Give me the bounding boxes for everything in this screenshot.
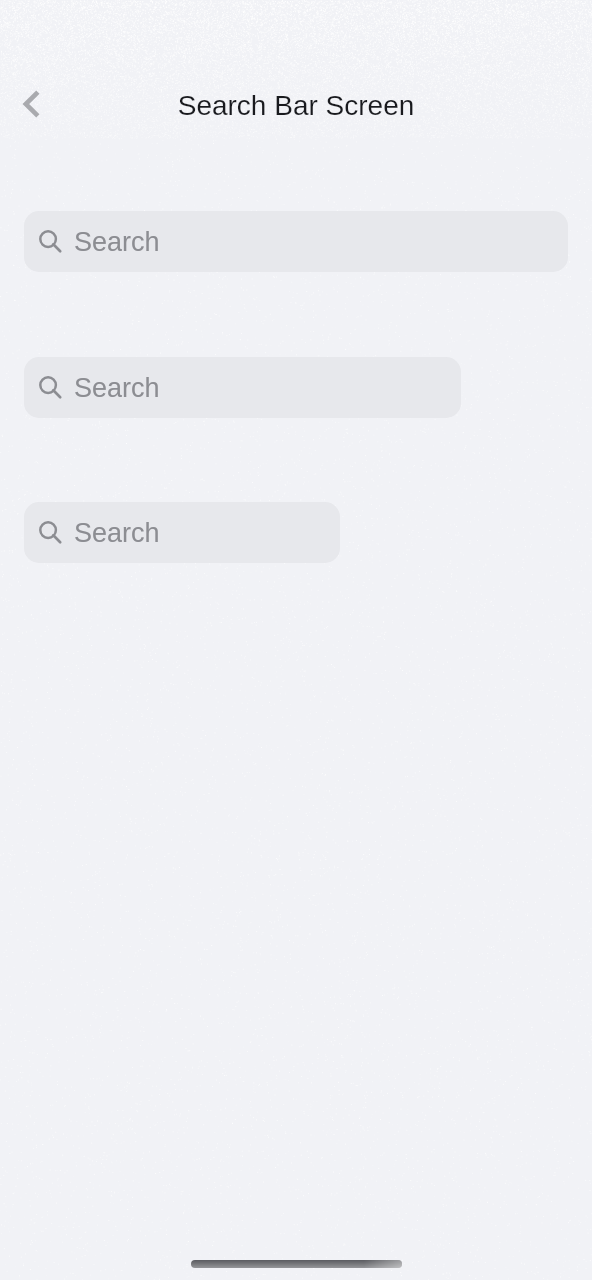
staticText: Search Bar Screen [0,90,592,121]
button[interactable]: Search [24,357,461,418]
button[interactable]: Search [24,211,568,272]
button[interactable]: Search [24,502,340,563]
staticText: Search [74,227,160,257]
staticText: Search [74,373,160,403]
button[interactable]: Back [7,80,55,128]
staticText: Search [74,518,160,548]
